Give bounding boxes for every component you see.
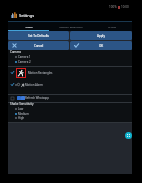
- button[interactable]: High: [8, 115, 132, 120]
- staticText: Camera 2: [18, 60, 31, 64]
- button[interactable]: Camera 1: [8, 54, 132, 59]
- staticText: 10:00: [121, 5, 129, 9]
- staticText: Motion Rectangles: [28, 71, 53, 75]
- staticText: MOTION DETECTION: [59, 25, 83, 28]
- button[interactable]: Set To Defaults: [8, 31, 69, 40]
- button[interactable]: Motion Rectangles: [8, 66, 132, 79]
- button[interactable]: Low: [8, 106, 132, 111]
- staticText: Camera 1: [18, 55, 31, 59]
- staticText: Shake Sensitivity: [10, 102, 34, 106]
- staticText: Medium: [18, 112, 29, 116]
- button[interactable]: Motion Alarm: [8, 81, 132, 88]
- staticText: VIDEO: [25, 25, 33, 28]
- staticText: Low: [18, 107, 24, 111]
- staticText: High: [18, 116, 25, 120]
- button[interactable]: Apply: [70, 31, 132, 40]
- staticText: Cancel: [34, 44, 44, 48]
- staticText: Apply: [97, 34, 105, 38]
- button[interactable]: Camera 2: [8, 59, 132, 64]
- button[interactable]: Refresh Whatsapp: [8, 95, 132, 101]
- staticText: Set To Defaults: [28, 34, 50, 38]
- button[interactable]: ALARM: [91, 21, 132, 31]
- staticText: ALARM: [108, 25, 116, 28]
- button[interactable]: VIDEO: [8, 21, 50, 31]
- button[interactable]: Medium: [8, 111, 132, 116]
- staticText: OK: [99, 44, 104, 48]
- button[interactable]: Cancel: [8, 41, 69, 50]
- button[interactable]: MOTION DETECTION: [50, 21, 91, 31]
- button[interactable]: Apps: [125, 132, 132, 139]
- button[interactable]: OK: [70, 41, 132, 50]
- staticText: Settings: [19, 13, 35, 18]
- staticText: 100%: [109, 5, 117, 9]
- staticText: Motion Alarm: [25, 83, 43, 87]
- staticText: Camera: [10, 50, 21, 54]
- staticText: Refresh Whatsapp: [25, 96, 50, 100]
